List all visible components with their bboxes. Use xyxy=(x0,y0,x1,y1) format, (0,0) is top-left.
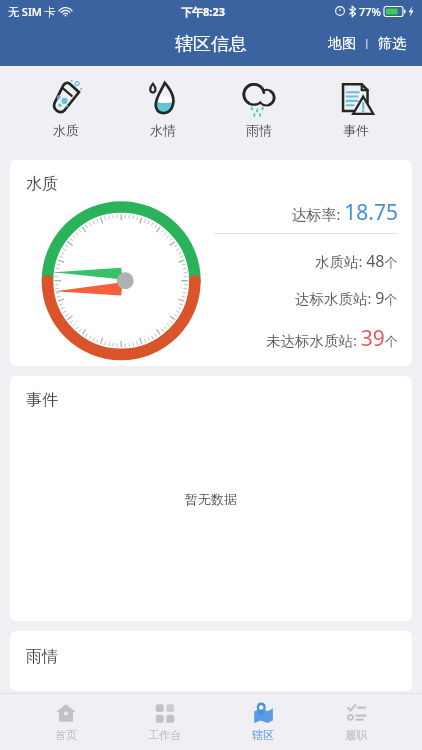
button[interactable]: 雨情 xyxy=(229,78,289,140)
button[interactable]: 筛选 xyxy=(374,31,410,57)
staticText: 水情 xyxy=(150,122,176,138)
staticText: 水质 xyxy=(53,122,79,138)
staticText: 暂无数据 xyxy=(185,491,237,507)
button[interactable]: 工作台 xyxy=(132,698,197,746)
staticText: 履职 xyxy=(345,728,367,742)
staticText: 辖区 xyxy=(252,728,274,742)
button[interactable]: 地图 xyxy=(324,31,360,57)
staticText: 事件 xyxy=(26,390,58,410)
staticText: 未达标水质站: 39个 xyxy=(266,324,398,353)
button[interactable]: 辖区 xyxy=(236,698,290,746)
button[interactable]: 事件 xyxy=(10,376,412,621)
staticText: 辖区信息 xyxy=(175,33,247,56)
staticText: 工作台 xyxy=(148,728,181,742)
button[interactable]: 履职 xyxy=(329,698,383,746)
staticText: 无 SIM 卡 xyxy=(8,4,56,19)
button[interactable]: 水情 xyxy=(133,78,193,140)
button[interactable]: 雨情 xyxy=(10,631,412,691)
staticText: 雨情 xyxy=(246,122,272,138)
staticText: 77% xyxy=(359,4,381,19)
staticText: l xyxy=(365,35,369,53)
staticText: 达标水质站: 9个 xyxy=(295,287,398,309)
staticText: 首页 xyxy=(55,728,77,742)
staticText: 地图 xyxy=(328,35,356,53)
button[interactable]: 事件 xyxy=(326,78,386,140)
staticText: 水质站: 48个 xyxy=(315,250,398,272)
staticText: 水质 xyxy=(26,174,58,194)
staticText: 达标率: 18.75 xyxy=(291,198,398,227)
button[interactable]: 水质 xyxy=(10,160,412,366)
button[interactable]: 水质 xyxy=(36,78,96,140)
staticText: 事件 xyxy=(343,122,369,138)
button[interactable]: 首页 xyxy=(39,698,93,746)
staticText: 下午8:23 xyxy=(181,4,225,19)
staticText: 筛选 xyxy=(378,35,406,53)
staticText: 雨情 xyxy=(26,647,58,667)
